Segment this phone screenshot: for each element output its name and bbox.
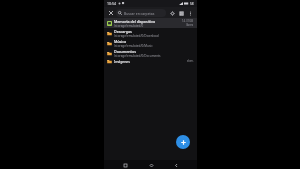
- button[interactable]: Create new: [176, 135, 190, 149]
- staticText: 58: [190, 2, 194, 6]
- button[interactable]: Música: [104, 38, 197, 48]
- staticText: Memoria del dispositivo: [114, 19, 156, 24]
- staticText: Buscar en carpetas: [124, 11, 155, 16]
- button[interactable]: Grid view: [177, 9, 185, 17]
- button[interactable]: Back: [172, 161, 180, 169]
- button[interactable]: Documentos: [104, 48, 197, 58]
- button[interactable]: Home: [147, 161, 155, 169]
- staticText: Descargas: [114, 29, 132, 34]
- button[interactable]: More options: [186, 9, 194, 17]
- button[interactable]: Close: [107, 9, 115, 17]
- staticText: Documentos: [114, 49, 136, 54]
- staticText: elem.: [187, 59, 194, 63]
- button[interactable]: Imágenes: [104, 58, 197, 64]
- staticText: /storage/emulated/0: [114, 24, 144, 28]
- staticText: libres: [186, 23, 194, 27]
- staticText: /storage/emulated/0/Music: [114, 44, 153, 48]
- button[interactable]: Buscar en carpetas: [116, 9, 166, 17]
- button[interactable]: Settings: [168, 9, 176, 17]
- button[interactable]: Memoria del dispositivo: [104, 18, 197, 28]
- staticText: Música: [114, 39, 127, 44]
- staticText: 14.31GB: [182, 19, 194, 23]
- staticText: Imágenes: [114, 59, 187, 64]
- button[interactable]: Descargas: [104, 28, 197, 38]
- staticText: /storage/emulated/0/Download: [114, 34, 159, 38]
- staticText: 10:54: [107, 1, 116, 6]
- button[interactable]: Recents: [121, 161, 129, 169]
- staticText: /storage/emulated/0/Documents: [114, 54, 161, 58]
